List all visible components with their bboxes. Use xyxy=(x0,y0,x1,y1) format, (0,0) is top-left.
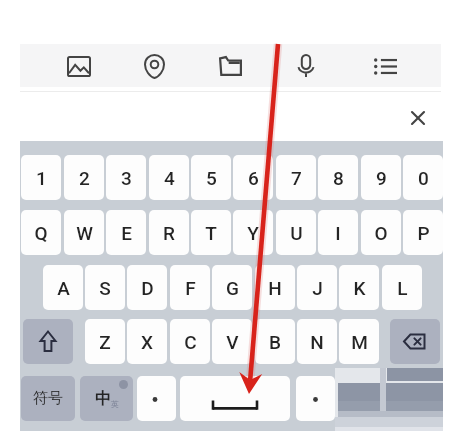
staticText: 4 xyxy=(164,167,175,189)
staticText: H xyxy=(268,277,282,299)
button[interactable]: U xyxy=(276,210,316,255)
button[interactable]: 4 xyxy=(149,155,189,200)
button[interactable]: P xyxy=(403,210,443,255)
staticText: T xyxy=(205,222,217,244)
button[interactable]: Location xyxy=(124,45,184,87)
staticText: E xyxy=(121,222,132,244)
button[interactable]: 1 xyxy=(21,155,61,200)
button[interactable]: D xyxy=(127,265,167,310)
button[interactable]: 5 xyxy=(191,155,231,200)
button[interactable]: W xyxy=(64,210,104,255)
staticText: A xyxy=(57,277,70,299)
staticText: Y xyxy=(247,222,259,244)
button[interactable]: Folder xyxy=(200,45,260,87)
button[interactable]: O xyxy=(361,210,401,255)
button[interactable]: 符号 xyxy=(21,376,75,421)
button[interactable]: I xyxy=(318,210,358,255)
staticText: 2 xyxy=(79,167,90,189)
button[interactable]: H xyxy=(255,265,295,310)
staticText: D xyxy=(141,277,154,299)
staticText: 6 xyxy=(248,167,259,189)
staticText: R xyxy=(163,222,175,244)
button[interactable]: Shift xyxy=(23,319,73,364)
staticText: 符号 xyxy=(33,389,63,408)
button[interactable]: R xyxy=(149,210,189,255)
button[interactable]: F xyxy=(170,265,210,310)
staticText: F xyxy=(185,277,196,299)
button[interactable]: Y xyxy=(233,210,273,255)
button[interactable]: K xyxy=(339,265,379,310)
button[interactable]: 7 xyxy=(276,155,316,200)
staticText: 5 xyxy=(206,167,217,189)
button[interactable]: S xyxy=(85,265,125,310)
button[interactable]: Close xyxy=(400,100,436,136)
button[interactable]: Enter xyxy=(335,368,443,431)
button[interactable]: Space xyxy=(180,376,290,421)
staticText: S xyxy=(99,277,111,299)
button[interactable]: L xyxy=(382,265,422,310)
button[interactable]: E xyxy=(106,210,146,255)
staticText: 3 xyxy=(121,167,132,189)
button[interactable]: V xyxy=(212,319,252,364)
staticText: X xyxy=(141,331,153,353)
button[interactable]: Backspace xyxy=(390,319,440,364)
staticText: 中 xyxy=(95,389,111,409)
staticText: B xyxy=(269,331,281,353)
staticText: Z xyxy=(99,331,111,353)
staticText: 7 xyxy=(291,167,302,189)
button[interactable]: M xyxy=(339,319,379,364)
button[interactable]: 0 xyxy=(403,155,443,200)
staticText: K xyxy=(353,277,366,299)
button[interactable]: Z xyxy=(85,319,125,364)
button[interactable]: 8 xyxy=(318,155,358,200)
button[interactable]: 2 xyxy=(64,155,104,200)
button[interactable]: Voice input xyxy=(276,45,336,87)
button[interactable]: B xyxy=(255,319,295,364)
staticText: M xyxy=(351,331,368,353)
staticText: V xyxy=(226,331,239,353)
staticText: U xyxy=(290,222,303,244)
staticText: Q xyxy=(34,222,48,244)
button[interactable]: X xyxy=(127,319,167,364)
staticText: 1 xyxy=(36,167,47,189)
button[interactable]: 6 xyxy=(233,155,273,200)
staticText: W xyxy=(76,222,93,244)
staticText: L xyxy=(397,277,408,299)
button[interactable]: G xyxy=(212,265,252,310)
button[interactable]: Period xyxy=(296,376,335,421)
button[interactable]: J xyxy=(297,265,337,310)
staticText: I xyxy=(335,222,341,244)
button[interactable]: C xyxy=(170,319,210,364)
staticText: C xyxy=(184,331,197,353)
button[interactable]: A xyxy=(43,265,83,310)
button[interactable]: 9 xyxy=(361,155,401,200)
staticText: N xyxy=(310,331,324,353)
staticText: P xyxy=(417,222,430,244)
button[interactable]: N xyxy=(297,319,337,364)
staticText: O xyxy=(374,222,388,244)
button[interactable]: 中 xyxy=(80,376,133,421)
button[interactable]: T xyxy=(191,210,231,255)
staticText: J xyxy=(312,277,323,299)
staticText: 9 xyxy=(376,167,387,189)
staticText: 0 xyxy=(418,167,429,189)
staticText: 英 xyxy=(111,399,119,409)
button[interactable]: List xyxy=(355,45,415,87)
staticText: 8 xyxy=(333,167,344,189)
button[interactable]: Comma xyxy=(137,376,176,421)
button[interactable]: 3 xyxy=(106,155,146,200)
staticText: G xyxy=(226,277,239,299)
button[interactable]: Image xyxy=(49,45,109,87)
button[interactable]: Q xyxy=(21,210,61,255)
